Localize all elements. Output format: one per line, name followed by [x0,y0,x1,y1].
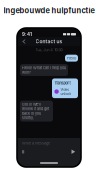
staticText: Transport [54,81,70,85]
staticText: Hello [67,56,76,60]
staticText: 9:41 [22,31,32,37]
button[interactable]: Attach [20,148,26,155]
button[interactable]: Back [21,38,28,45]
button[interactable]: Send [69,147,78,156]
staticText: Hello! What can I help you with? [22,65,66,74]
staticText: Ingebouwde hulpfunctie [3,6,94,15]
staticText: Got it! We'll review it and get back to … [22,102,49,120]
staticText: Tue, Jun 4 10:30 [35,48,62,52]
staticText: Video unlock [60,87,71,96]
staticText: Write a message [22,141,50,145]
staticText: Contact us [35,39,62,44]
